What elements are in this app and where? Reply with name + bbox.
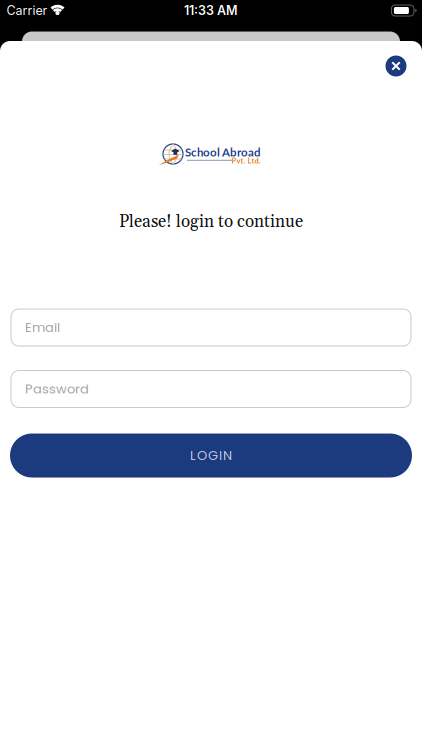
staticText: Carrier <box>6 3 47 18</box>
staticText: Please! login to continue <box>119 211 303 233</box>
staticText: Email <box>25 318 60 337</box>
staticText: School Abroad <box>185 145 261 159</box>
button[interactable]: LOGIN <box>10 433 412 477</box>
staticText: Password <box>25 380 89 398</box>
staticText: L O G I N <box>190 446 232 465</box>
button[interactable]: Email text field <box>11 309 411 346</box>
button[interactable]: Password text field <box>11 370 411 407</box>
staticText: 11:33 AM <box>184 3 238 18</box>
staticText: Pvt. Ltd. <box>231 156 260 165</box>
button[interactable]: Close <box>385 55 406 76</box>
